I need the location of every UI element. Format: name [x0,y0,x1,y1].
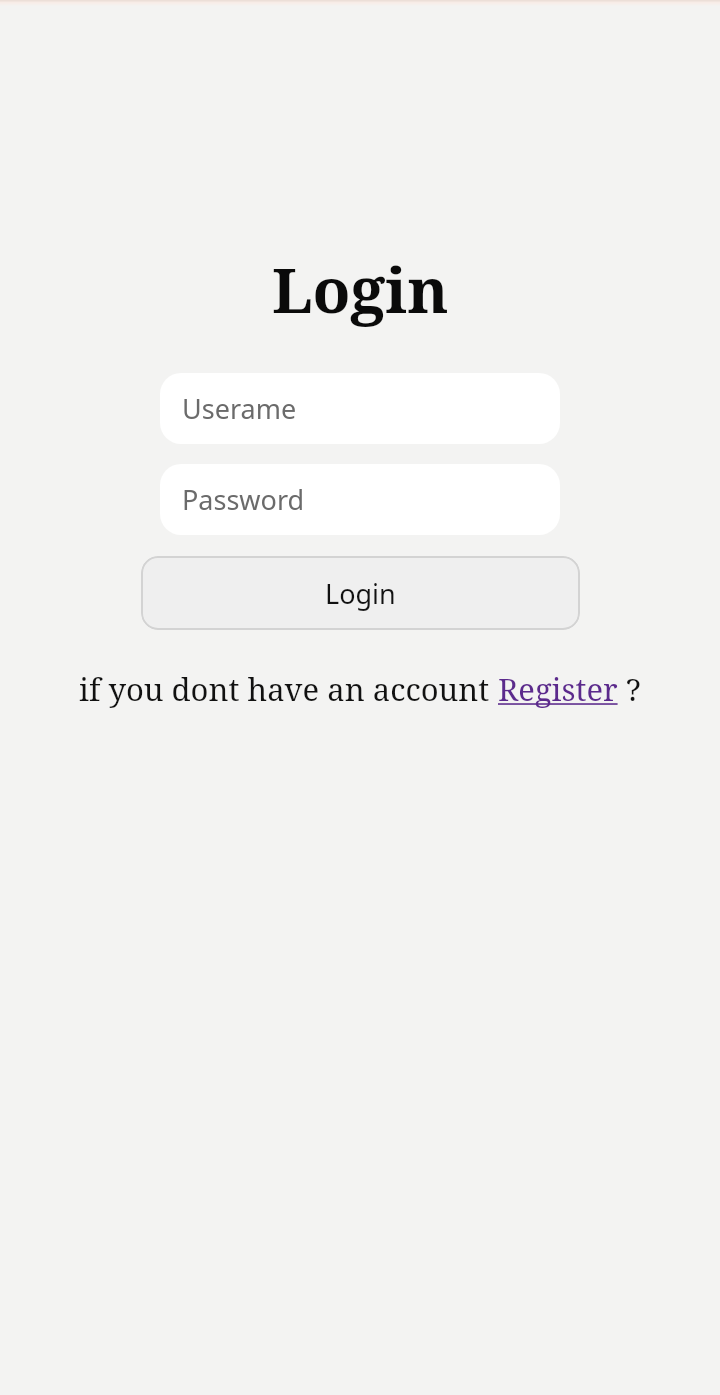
button[interactable]: Userame [160,373,560,444]
staticText: if you dont have an account [79,668,498,710]
button[interactable]: Register [498,668,626,710]
button[interactable]: Password [160,464,560,535]
staticText: Login [272,247,449,331]
staticText: ? [626,668,641,710]
staticText: Register [498,668,626,710]
staticText: Password [182,481,305,518]
button[interactable]: Login [141,556,580,630]
staticText: Userame [182,390,297,427]
staticText: Login [325,575,396,612]
